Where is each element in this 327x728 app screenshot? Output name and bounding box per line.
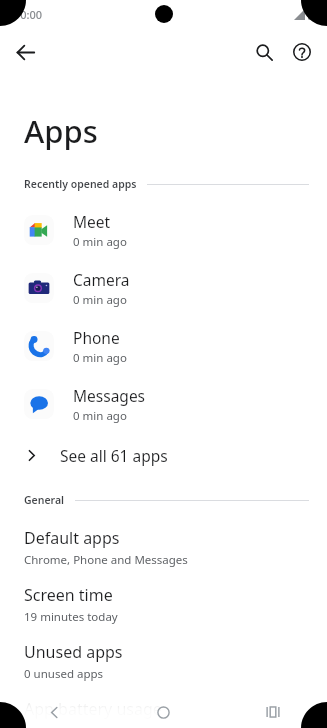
- button[interactable]: Search: [245, 33, 283, 71]
- staticText: Recently opened apps: [24, 177, 137, 191]
- staticText: Screen time: [24, 584, 113, 606]
- staticText: 0 min ago: [73, 292, 127, 308]
- staticText: 10:00: [14, 7, 43, 22]
- button[interactable]: Default apps: [0, 519, 327, 576]
- button[interactable]: See all 61 apps: [0, 433, 327, 477]
- staticText: 0 unused apps: [24, 666, 104, 682]
- button[interactable]: Meet: [0, 201, 327, 259]
- staticText: Default apps: [24, 527, 120, 549]
- staticText: Set battery usage for apps: [24, 723, 167, 728]
- button[interactable]: Screen time: [0, 576, 327, 633]
- staticText: General: [24, 493, 65, 507]
- staticText: App battery usage: [24, 698, 162, 720]
- staticText: Phone: [73, 327, 120, 348]
- staticText: Messages: [73, 385, 146, 406]
- staticText: 0 min ago: [73, 234, 127, 250]
- button[interactable]: Phone: [0, 317, 327, 375]
- button[interactable]: Unused apps: [0, 633, 327, 690]
- staticText: Apps: [24, 110, 98, 152]
- staticText: See all 61 apps: [60, 445, 168, 466]
- button[interactable]: Help: [283, 33, 321, 71]
- button[interactable]: Camera: [0, 259, 327, 317]
- staticText: 0 min ago: [73, 350, 127, 366]
- staticText: Camera: [73, 269, 130, 290]
- button[interactable]: App battery usage: [0, 690, 327, 728]
- staticText: 19 minutes today: [24, 609, 118, 625]
- staticText: Chrome, Phone and Messages: [24, 552, 188, 568]
- button[interactable]: Home: [109, 696, 218, 728]
- button[interactable]: Messages: [0, 375, 327, 433]
- button[interactable]: Recent apps: [218, 696, 327, 728]
- staticText: Meet: [73, 211, 111, 232]
- staticText: 0 min ago: [73, 408, 127, 424]
- button[interactable]: Back: [0, 696, 109, 728]
- button[interactable]: Back: [6, 33, 44, 71]
- staticText: Unused apps: [24, 641, 123, 663]
